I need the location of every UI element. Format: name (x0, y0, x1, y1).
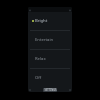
staticText: SETTINGS (44, 88, 57, 92)
staticText: Off (35, 75, 42, 81)
button[interactable]: Relax (28, 50, 72, 68)
staticText: Relax (35, 56, 46, 62)
button[interactable]: Entertain (28, 31, 72, 49)
button[interactable]: Off (28, 69, 72, 87)
staticText: Entertain (35, 37, 54, 43)
button[interactable]: SETTINGS (43, 88, 57, 92)
button[interactable]: Bright (28, 12, 72, 30)
staticText: Bright (35, 18, 48, 24)
